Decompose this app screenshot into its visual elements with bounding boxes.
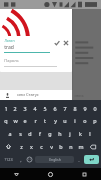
staticText: 0 xyxy=(93,105,97,112)
button[interactable]: ?123 xyxy=(1,153,16,166)
staticText: Логин xyxy=(4,38,15,43)
button[interactable]: b xyxy=(56,140,66,153)
button[interactable]: t xyxy=(40,114,50,127)
button[interactable]: English xyxy=(35,156,74,163)
staticText: z xyxy=(20,143,23,150)
button[interactable]: o xyxy=(80,114,90,127)
button[interactable]: 9 xyxy=(80,102,90,114)
button[interactable]: 0 xyxy=(90,102,100,114)
staticText: u xyxy=(63,117,67,124)
staticText: e xyxy=(23,117,27,124)
staticText: k xyxy=(79,130,82,137)
staticText: g xyxy=(48,130,52,137)
button[interactable]: или Статус xyxy=(17,92,39,98)
button[interactable]: 1 xyxy=(1,102,10,114)
staticText: m xyxy=(78,143,84,150)
button[interactable]: Home xyxy=(33,168,67,180)
button[interactable]: , xyxy=(16,153,25,166)
button[interactable]: y xyxy=(50,114,60,127)
staticText: a xyxy=(8,130,12,137)
staticText: 2 xyxy=(13,105,17,112)
button[interactable]: 2 xyxy=(10,102,20,114)
button[interactable]: 7 xyxy=(60,102,70,114)
button[interactable]: 3 xyxy=(20,102,30,114)
button[interactable]: g xyxy=(45,127,55,140)
staticText: f xyxy=(39,130,41,137)
staticText: n xyxy=(69,143,73,150)
staticText: 5 xyxy=(43,105,47,112)
button[interactable]: e xyxy=(20,114,30,127)
button[interactable]: k xyxy=(75,127,85,140)
button[interactable]: f xyxy=(35,127,45,140)
button[interactable]: Cancel xyxy=(61,38,70,47)
staticText: w xyxy=(13,117,18,124)
button[interactable]: Shift xyxy=(1,140,16,153)
button[interactable]: z xyxy=(16,140,26,153)
staticText: o xyxy=(83,117,87,124)
staticText: c xyxy=(40,143,43,150)
staticText: 1 xyxy=(4,105,8,112)
staticText: r xyxy=(34,117,37,124)
button[interactable]: l xyxy=(85,127,95,140)
button[interactable]: Back xyxy=(0,168,33,180)
button[interactable]: 8 xyxy=(70,102,80,114)
staticText: English xyxy=(49,157,61,162)
staticText: p xyxy=(93,117,97,124)
staticText: ?123 xyxy=(4,157,13,162)
staticText: q xyxy=(4,117,8,124)
staticText: . xyxy=(78,156,80,163)
staticText: связь xyxy=(74,93,84,98)
staticText: d xyxy=(28,130,32,137)
button[interactable]: Voice input xyxy=(3,91,11,99)
button[interactable]: Enter xyxy=(84,155,99,164)
button[interactable]: c xyxy=(36,140,46,153)
button[interactable]: Recent apps xyxy=(67,168,101,180)
staticText: 7 xyxy=(63,105,67,112)
button[interactable]: Confirm xyxy=(52,38,61,47)
button[interactable]: Emoji xyxy=(25,153,34,166)
staticText: h xyxy=(58,130,62,137)
button[interactable]: m xyxy=(76,140,86,153)
staticText: v xyxy=(50,143,53,150)
button[interactable]: v xyxy=(46,140,56,153)
button[interactable]: j xyxy=(65,127,75,140)
staticText: i xyxy=(74,117,76,124)
button[interactable]: h xyxy=(55,127,65,140)
staticText: 3 xyxy=(23,105,27,112)
button[interactable]: u xyxy=(60,114,70,127)
button[interactable]: 5 xyxy=(40,102,50,114)
staticText: trad xyxy=(4,44,14,51)
button[interactable]: . xyxy=(75,153,83,166)
button[interactable]: d xyxy=(25,127,35,140)
button[interactable]: n xyxy=(66,140,76,153)
staticText: y xyxy=(54,117,57,124)
staticText: x xyxy=(30,143,33,150)
button[interactable]: a xyxy=(5,127,15,140)
staticText: , xyxy=(20,156,22,163)
staticText: 8 xyxy=(73,105,77,112)
button[interactable]: p xyxy=(90,114,100,127)
button[interactable]: 6 xyxy=(50,102,60,114)
staticText: Пароль xyxy=(4,58,19,63)
button[interactable]: Пароль xyxy=(4,58,57,67)
button[interactable]: 4 xyxy=(30,102,40,114)
staticText: l xyxy=(89,130,91,137)
button[interactable]: q xyxy=(1,114,10,127)
staticText: s xyxy=(19,130,22,137)
button[interactable]: Backspace xyxy=(86,140,100,153)
staticText: 4 xyxy=(33,105,37,112)
button[interactable]: x xyxy=(26,140,36,153)
staticText: t xyxy=(44,117,46,124)
staticText: 6 xyxy=(53,105,57,112)
button[interactable]: r xyxy=(30,114,40,127)
staticText: 9 xyxy=(83,105,87,112)
staticText: b xyxy=(59,143,63,150)
button[interactable]: s xyxy=(15,127,25,140)
button[interactable]: w xyxy=(10,114,20,127)
button[interactable]: i xyxy=(70,114,80,127)
staticText: j xyxy=(69,130,71,137)
